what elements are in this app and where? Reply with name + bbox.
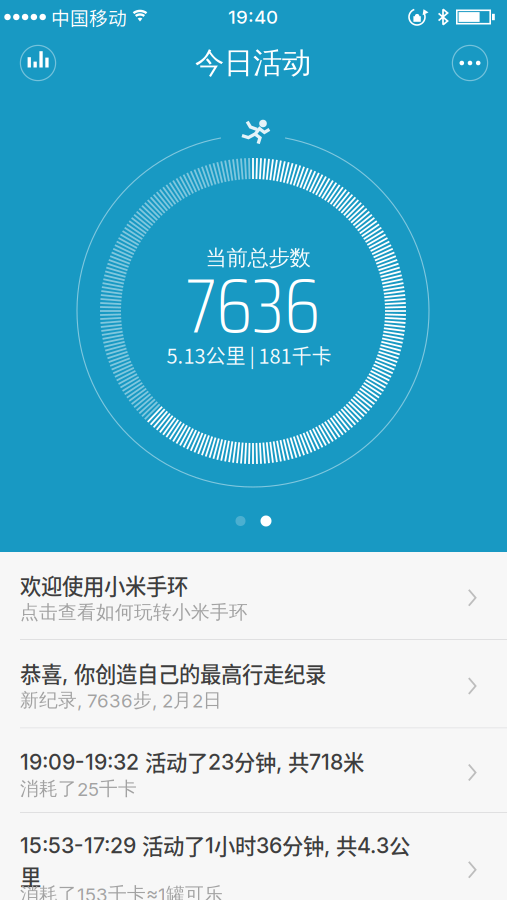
staticText: 消耗了25千卡 <box>20 777 137 800</box>
staticText: 15:53-17:29 活动了1小时36分钟, 共4.3公 里 <box>20 829 410 891</box>
staticText: 7636 <box>186 246 320 366</box>
button[interactable]: 更多 <box>448 41 492 85</box>
staticText: 消耗了153千卡≈1罐可乐 <box>20 882 223 900</box>
staticText: 当前总步数 <box>205 245 310 271</box>
staticText: 恭喜, 你创造自己的最高行走纪录 <box>20 657 326 688</box>
staticText: 19:40 <box>228 6 278 28</box>
staticText: 新纪录, 7636步, 2月2日 <box>20 688 222 712</box>
staticText: 5.13公里 | 181千卡 <box>166 340 331 369</box>
staticText: 今日活动 <box>195 44 311 81</box>
button[interactable]: 统计 <box>16 41 60 85</box>
staticText: 点击查看如何玩转小米手环 <box>20 600 248 624</box>
button[interactable]: 恭喜, 你创造自己的最高行走纪录 <box>0 640 507 727</box>
staticText: 19:09-19:32 活动了23分钟, 共718米 <box>20 746 364 777</box>
button[interactable]: 15:53-17:29 活动了1小时36分钟, 共4.3公 里 <box>0 813 507 900</box>
button[interactable]: 19:09-19:32 活动了23分钟, 共718米 <box>0 728 507 812</box>
staticText: 欢迎使用小米手环 <box>20 569 188 600</box>
staticText: 中国移动 <box>51 3 127 30</box>
button[interactable]: 欢迎使用小米手环 <box>0 552 507 639</box>
